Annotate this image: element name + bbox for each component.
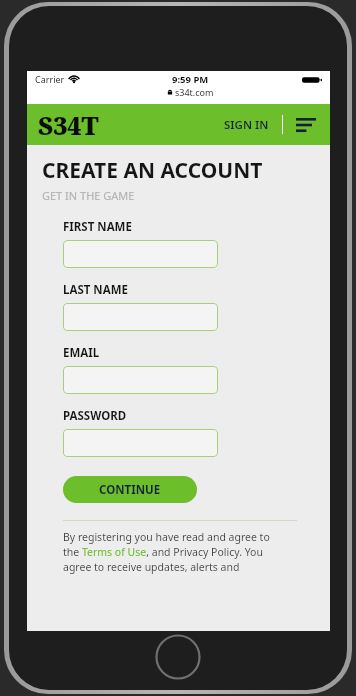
button[interactable]: CONTINUE (63, 476, 197, 503)
staticText: Carrier (35, 73, 65, 85)
staticText: CREATE AN ACCOUNT (42, 156, 263, 185)
staticText: GET IN THE GAME (42, 188, 135, 203)
button[interactable] (63, 303, 218, 331)
button[interactable] (63, 240, 218, 268)
staticText: 9:59 PM (172, 73, 209, 86)
staticText: EMAIL (63, 345, 100, 361)
button[interactable]: Menu (293, 113, 319, 137)
button[interactable]: By registering you have read and agree t… (63, 530, 299, 574)
button[interactable]: SIGN IN (220, 111, 273, 139)
staticText: CONTINUE (99, 482, 161, 498)
staticText: LAST NAME (63, 282, 128, 298)
staticText: FIRST NAME (63, 219, 132, 235)
button[interactable] (63, 429, 218, 457)
button[interactable] (63, 366, 218, 394)
button[interactable]: S34T (38, 108, 99, 142)
staticText: S34T (38, 108, 99, 142)
staticText: SIGN IN (224, 117, 269, 133)
staticText: s34t.com (175, 86, 214, 98)
staticText: PASSWORD (63, 408, 127, 424)
